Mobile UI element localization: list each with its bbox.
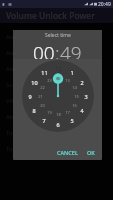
button[interactable]: OK bbox=[82, 146, 100, 159]
staticText: Select time bbox=[45, 32, 71, 39]
staticText: 9 bbox=[28, 93, 32, 100]
staticText: 19 bbox=[47, 110, 52, 115]
staticText: 13 bbox=[65, 78, 70, 83]
staticText: Auto lock screen bbox=[6, 33, 53, 41]
staticText: 3 bbox=[84, 93, 88, 100]
staticText: : bbox=[55, 40, 60, 59]
staticText: 1 bbox=[70, 69, 74, 76]
staticText: 17 bbox=[65, 110, 70, 115]
button[interactable]: Clock face hour picker bbox=[22, 60, 94, 132]
staticText: OK bbox=[87, 149, 95, 156]
button[interactable]: Auto power bbox=[0, 61, 113, 77]
staticText: 15 bbox=[74, 94, 79, 99]
staticText: 23 bbox=[47, 78, 52, 83]
staticText: Turn off at bbox=[6, 145, 36, 153]
staticText: Volume Unlock Power bbox=[6, 10, 95, 22]
staticText: Schedule bbox=[6, 81, 32, 89]
staticText: 18 bbox=[56, 112, 61, 117]
staticText: 16 bbox=[72, 103, 77, 108]
staticText: 14 bbox=[72, 85, 77, 90]
staticText: 6 bbox=[56, 121, 60, 128]
staticText: 00 bbox=[56, 76, 61, 81]
staticText: 8 bbox=[32, 107, 36, 114]
button[interactable]: 00 bbox=[33, 40, 55, 59]
staticText: Auto power bbox=[6, 65, 39, 73]
staticText: Turn on at bbox=[6, 129, 35, 137]
button[interactable]: Schedule bbox=[0, 77, 113, 93]
button[interactable]: Turn on at bbox=[0, 125, 113, 141]
staticText: 22 bbox=[40, 85, 45, 90]
staticText: CANCEL bbox=[57, 149, 78, 156]
staticText: 11 bbox=[41, 69, 48, 76]
button[interactable]: About bbox=[0, 109, 113, 125]
button[interactable]: 49 bbox=[60, 40, 82, 59]
staticText: 20:49 bbox=[98, 1, 111, 8]
button[interactable]: Turn off at bbox=[0, 141, 113, 157]
staticText: 2 bbox=[80, 79, 84, 86]
staticText: 4 bbox=[80, 107, 84, 114]
button[interactable]: Vibrate bbox=[0, 93, 113, 109]
staticText: 21 bbox=[38, 94, 43, 99]
button[interactable]: Auto unlock bbox=[0, 45, 113, 61]
staticText: 5 bbox=[70, 117, 74, 124]
staticText: Auto unlock bbox=[6, 49, 40, 57]
button[interactable]: CANCEL bbox=[53, 146, 82, 159]
staticText: 10 bbox=[31, 79, 38, 86]
staticText: Vibrate bbox=[6, 97, 27, 105]
staticText: About bbox=[6, 113, 24, 121]
staticText: 20 bbox=[40, 103, 45, 108]
button[interactable]: Auto lock screen bbox=[0, 29, 113, 45]
staticText: 7 bbox=[42, 117, 46, 124]
